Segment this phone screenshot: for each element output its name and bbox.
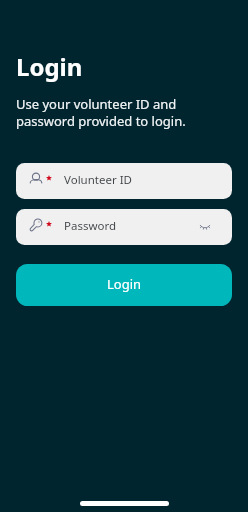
staticText: Login <box>16 50 83 83</box>
staticText: Use your volunteer ID and password provi… <box>16 95 186 130</box>
button[interactable]: Show password <box>192 214 218 240</box>
staticText: Volunteer ID <box>64 172 132 188</box>
button[interactable]: Login <box>16 264 232 306</box>
staticText: Login <box>107 275 142 293</box>
button[interactable]: Volunteer ID <box>16 163 232 199</box>
staticText: Password <box>64 218 117 234</box>
button[interactable]: Password <box>16 209 232 245</box>
